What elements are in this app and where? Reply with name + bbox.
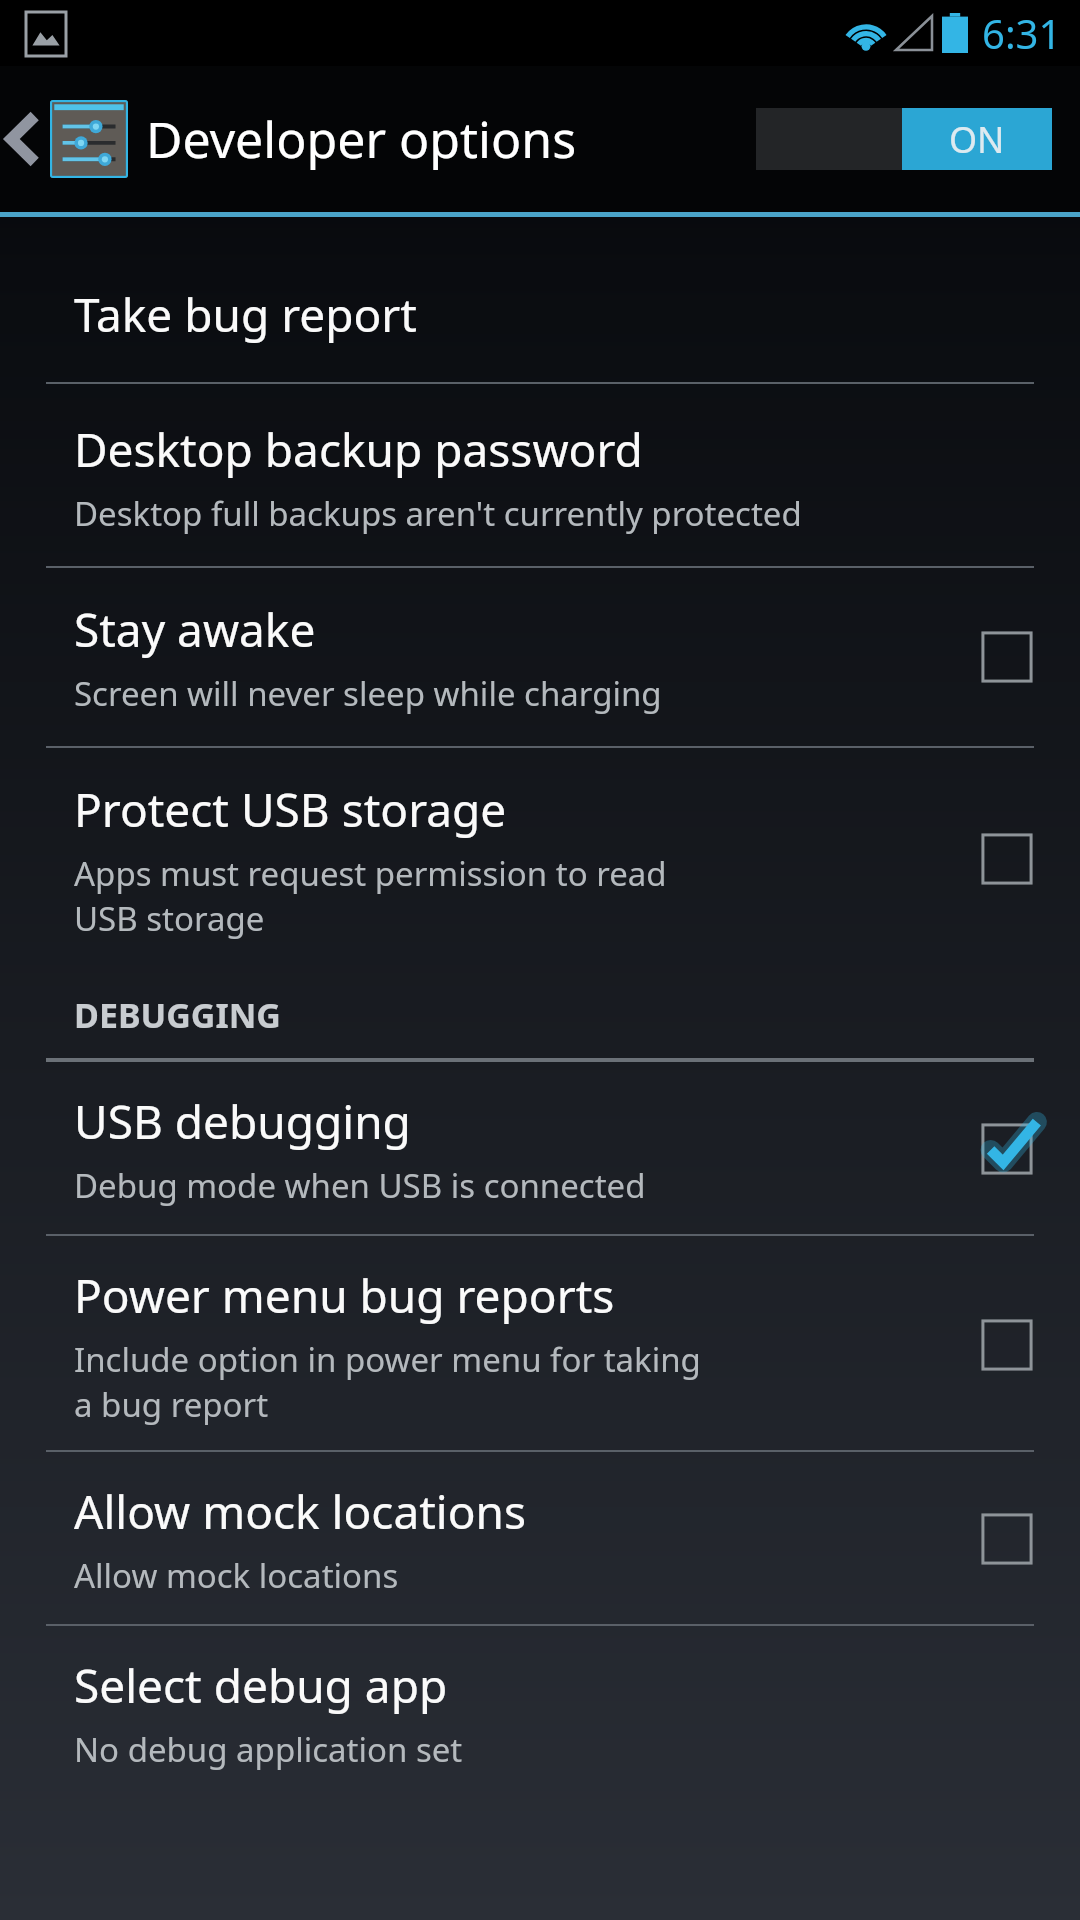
button[interactable]: Unchecked xyxy=(964,816,1050,902)
staticText: Protect USB storage xyxy=(74,778,507,841)
button[interactable]: Stay awake xyxy=(0,568,1080,746)
staticText: DEBUGGING xyxy=(74,992,281,1038)
staticText: Apps must request permission to read USB… xyxy=(74,851,667,940)
staticText: Select debug app xyxy=(74,1654,448,1717)
staticText: Allow mock locations xyxy=(74,1480,526,1543)
button[interactable]: Unchecked xyxy=(964,1496,1050,1582)
button[interactable]: Checked xyxy=(964,1106,1050,1192)
button[interactable]: Developer options on xyxy=(756,108,1052,170)
button[interactable]: Navigate up xyxy=(0,100,142,178)
staticText: 6:31 xyxy=(982,6,1062,60)
button[interactable]: Select debug app xyxy=(0,1626,1080,1798)
button[interactable]: USB debugging xyxy=(0,1062,1080,1234)
staticText: Allow mock locations xyxy=(74,1553,399,1598)
button[interactable]: Allow mock locations xyxy=(0,1452,1080,1624)
staticText: Desktop backup password xyxy=(74,418,643,481)
button[interactable]: Unchecked xyxy=(964,614,1050,700)
staticText: Developer options xyxy=(146,105,577,173)
staticText: Take bug report xyxy=(74,283,417,346)
staticText: Include option in power menu for taking … xyxy=(74,1337,701,1426)
button[interactable]: Unchecked xyxy=(964,1302,1050,1388)
button[interactable]: Protect USB storage xyxy=(0,748,1080,966)
staticText: Debug mode when USB is connected xyxy=(74,1163,646,1208)
staticText: Screen will never sleep while charging xyxy=(74,671,662,716)
button[interactable]: Power menu bug reports xyxy=(0,1236,1080,1450)
staticText: Desktop full backups aren't currently pr… xyxy=(74,491,802,536)
staticText: No debug application set xyxy=(74,1727,463,1772)
staticText: ON xyxy=(949,115,1005,164)
staticText: USB debugging xyxy=(74,1090,411,1153)
button[interactable]: Desktop backup password xyxy=(0,384,1080,566)
staticText: Stay awake xyxy=(74,598,316,661)
button[interactable]: Take bug report xyxy=(0,247,1080,382)
staticText: Power menu bug reports xyxy=(74,1264,615,1327)
